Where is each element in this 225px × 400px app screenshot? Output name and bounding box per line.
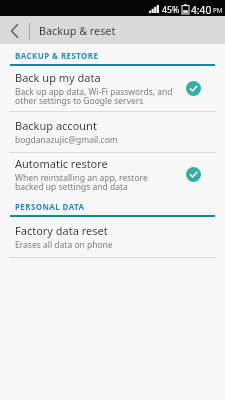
staticText: PM bbox=[213, 6, 223, 14]
staticText: Automatic restore bbox=[15, 156, 108, 171]
button[interactable]: Back bbox=[0, 16, 29, 44]
button[interactable]: Automatic restore bbox=[0, 153, 225, 195]
button[interactable]: Back up my data bbox=[0, 66, 225, 111]
staticText: bogdanazujic@gmail.com bbox=[15, 134, 118, 146]
staticText: Factory data reset bbox=[15, 223, 108, 238]
staticText: 45% bbox=[162, 4, 180, 16]
staticText: Back up app data, Wi-Fi passwords, and o… bbox=[15, 86, 173, 107]
staticText: PERSONAL DATA bbox=[15, 201, 85, 212]
staticText: When reinstalling an app, restore backed… bbox=[15, 172, 148, 193]
button[interactable]: Backup account bbox=[0, 112, 225, 152]
staticText: Backup & reset bbox=[39, 23, 116, 38]
staticText: Backup account bbox=[15, 118, 97, 133]
staticText: Back up my data bbox=[15, 70, 101, 85]
button[interactable]: Factory data reset bbox=[0, 217, 225, 257]
staticText: BACKUP & RESTORE bbox=[15, 50, 99, 61]
staticText: 4:40 bbox=[191, 3, 212, 17]
staticText: Erases all data on phone bbox=[15, 239, 113, 251]
